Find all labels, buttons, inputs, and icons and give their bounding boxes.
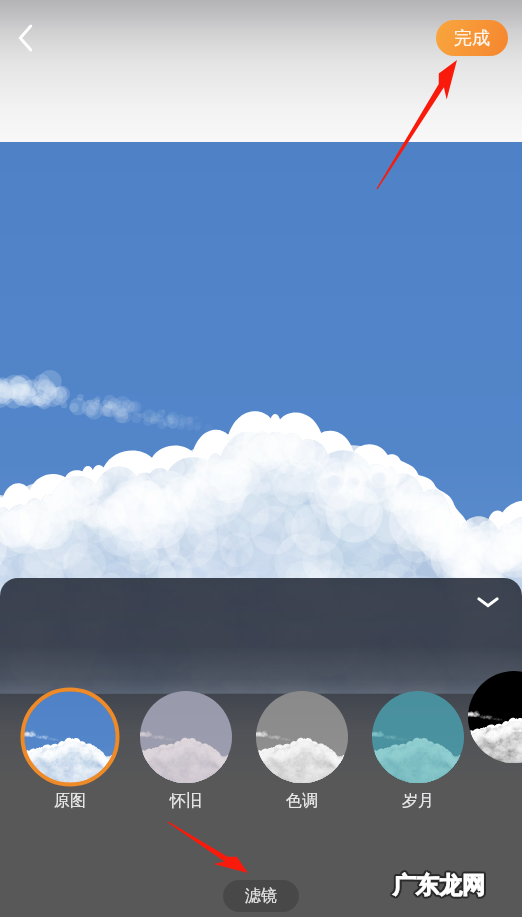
button[interactable]: 怀旧 (137, 688, 235, 811)
staticText: 广东龙网 (393, 873, 485, 902)
staticText: 广东龙网 (392, 871, 484, 900)
button[interactable]: Collapse (467, 581, 509, 623)
button[interactable]: 色调 (253, 688, 351, 811)
staticText: 广东龙网 (395, 872, 487, 901)
staticText: 广东龙网 (391, 872, 483, 901)
staticText: 广东龙网 (391, 871, 483, 900)
staticText: 广东龙网 (394, 873, 486, 902)
staticText: 广东龙网 (392, 873, 484, 902)
staticText: 滤镜 (245, 886, 277, 906)
staticText: 广东龙网 (391, 870, 483, 899)
staticText: 广东龙网 (395, 871, 487, 900)
staticText: 原图 (54, 791, 86, 811)
staticText: 广东龙网 (393, 871, 485, 900)
staticText: 色调 (286, 791, 318, 811)
staticText: 广东龙网 (394, 869, 486, 898)
staticText: 广东龙网 (395, 870, 487, 899)
staticText: 广东龙网 (392, 870, 484, 899)
staticText: 广东龙网 (392, 872, 484, 901)
staticText: 广东龙网 (393, 872, 485, 901)
staticText: 广东龙网 (394, 871, 486, 900)
staticText: 广东龙网 (392, 869, 484, 898)
button[interactable]: 岁月 (369, 688, 467, 811)
staticText: 广东龙网 (393, 870, 485, 899)
button[interactable] (485, 688, 522, 813)
staticText: 怀旧 (170, 791, 202, 811)
button[interactable]: Back (3, 15, 49, 61)
button[interactable]: 滤镜 (223, 880, 299, 912)
staticText: 完成 (454, 27, 490, 50)
staticText: 广东龙网 (393, 869, 485, 898)
staticText: 广东龙网 (394, 872, 486, 901)
button[interactable]: 原图 (21, 688, 119, 811)
staticText: 岁月 (402, 791, 434, 811)
staticText: 广东龙网 (394, 870, 486, 899)
button[interactable]: 完成 (436, 20, 508, 56)
